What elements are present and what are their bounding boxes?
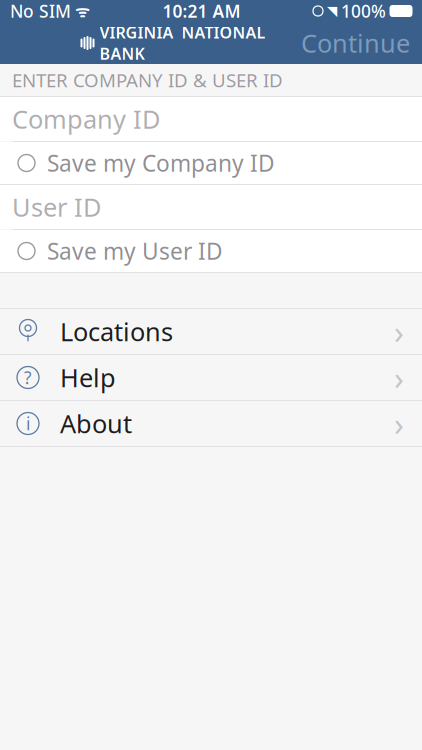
staticText: i: [26, 412, 30, 435]
staticText: Company ID: [12, 102, 160, 136]
button[interactable]: i: [0, 401, 422, 447]
staticText: User ID: [12, 190, 101, 224]
staticText: VIRGINIA NATIONAL BANK: [99, 22, 269, 64]
staticText: Help: [60, 361, 116, 394]
staticText: ENTER COMPANY ID & USER ID: [12, 68, 283, 92]
staticText: About: [60, 407, 132, 440]
button[interactable]: Save my User ID: [0, 230, 422, 273]
button[interactable]: ?: [0, 355, 422, 401]
staticText: Locations: [60, 315, 173, 348]
staticText: ◥: [327, 3, 337, 18]
staticText: 10:21 AM: [162, 0, 240, 22]
staticText: ›: [394, 402, 404, 445]
button[interactable]: Continue: [289, 23, 422, 63]
staticText: ›: [394, 356, 404, 399]
staticText: ?: [24, 366, 32, 389]
staticText: ›: [394, 310, 404, 353]
staticText: Save my User ID: [47, 236, 223, 266]
staticText: ᯤ: [71, 0, 90, 22]
button[interactable]: Locations: [0, 309, 422, 355]
staticText: No SIM: [10, 0, 71, 22]
staticText: 100%: [341, 0, 386, 22]
staticText: Save my Company ID: [47, 148, 275, 178]
staticText: Continue: [301, 26, 410, 60]
button[interactable]: Save my Company ID: [0, 142, 422, 185]
